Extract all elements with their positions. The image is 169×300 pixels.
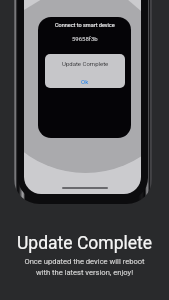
staticText: 59658f3b [72, 35, 98, 42]
staticText: Update Complete [17, 233, 152, 254]
staticText: Update Complete [62, 60, 109, 67]
button[interactable]: Ok [81, 78, 89, 85]
staticText: Connect to smart device [55, 22, 115, 28]
staticText: Once updated the device will reboot with… [24, 257, 145, 277]
